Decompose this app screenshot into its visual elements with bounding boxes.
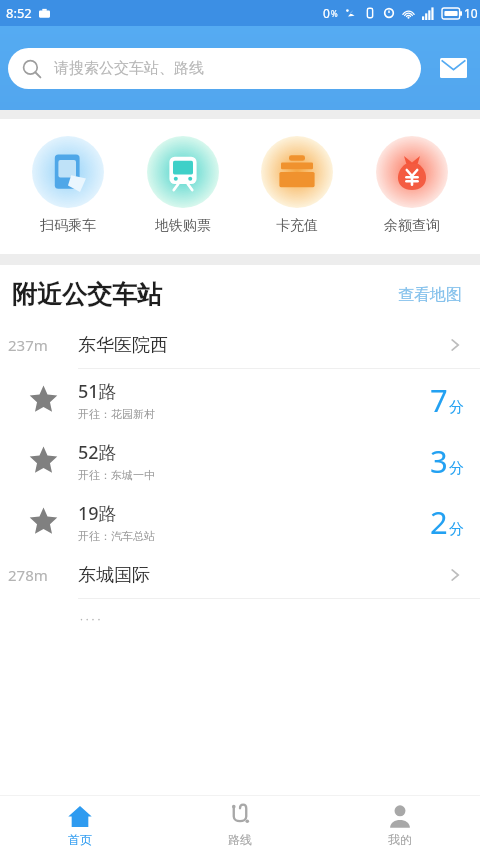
staticText: % — [331, 8, 338, 19]
staticText: 开往：汽车总站 — [78, 529, 155, 543]
button[interactable]: 查看地图 — [394, 281, 466, 309]
staticText: 237m — [8, 335, 48, 355]
staticText: 东华医院西 — [78, 334, 168, 357]
button[interactable]: 首页 — [0, 796, 160, 854]
button[interactable]: 扫码乘车 — [22, 136, 114, 235]
staticText: 7 — [430, 379, 448, 421]
staticText: 路线 — [228, 832, 252, 847]
button[interactable]: 请搜索公交车站、路线 — [8, 48, 421, 89]
staticText: 查看地图 — [398, 285, 462, 305]
button[interactable]: Favorite — [8, 446, 78, 475]
button[interactable]: Favorite — [0, 430, 480, 491]
button[interactable]: 卡充值 — [251, 136, 343, 235]
staticText: 2 — [430, 501, 448, 543]
staticText: 分 — [449, 459, 464, 478]
staticText: 请搜索公交车站、路线 — [54, 59, 204, 78]
staticText: 附近公交车站 — [12, 279, 162, 310]
staticText: 首页 — [68, 832, 92, 847]
button[interactable]: Favorite — [0, 491, 480, 552]
staticText: 地铁购票 — [155, 217, 211, 235]
staticText: 3 — [430, 440, 448, 482]
staticText: 扫码乘车 — [40, 217, 96, 235]
staticText: 开往：东城一中 — [78, 468, 155, 482]
button[interactable]: 278m — [0, 552, 480, 598]
button[interactable]: Favorite — [0, 369, 480, 430]
staticText: 278m — [8, 565, 48, 585]
staticText: 东城国际 — [78, 564, 150, 587]
staticText: 8:52 — [6, 4, 32, 22]
button[interactable]: Favorite — [8, 385, 78, 414]
staticText: 分 — [449, 520, 464, 539]
staticText: 卡充值 — [276, 217, 318, 235]
button[interactable]: 237m — [0, 322, 480, 368]
button[interactable]: 我的 — [320, 796, 480, 854]
button[interactable]: 地铁购票 — [137, 136, 229, 235]
button[interactable]: 路线 — [160, 796, 320, 854]
staticText: 余额查询 — [384, 217, 440, 235]
staticText: 51路 — [78, 379, 117, 404]
staticText: 开往：花园新村 — [78, 407, 155, 421]
button[interactable]: 余额查询 — [366, 136, 458, 235]
staticText: · · · · — [80, 611, 101, 626]
staticText: 分 — [449, 398, 464, 417]
staticText: 0 — [323, 5, 330, 21]
staticText: 52路 — [78, 440, 117, 465]
staticText: 19路 — [78, 501, 117, 526]
button[interactable]: Favorite — [8, 507, 78, 536]
button[interactable]: Messages — [432, 47, 474, 89]
staticText: 我的 — [388, 832, 412, 847]
staticText: 10 — [464, 5, 478, 21]
